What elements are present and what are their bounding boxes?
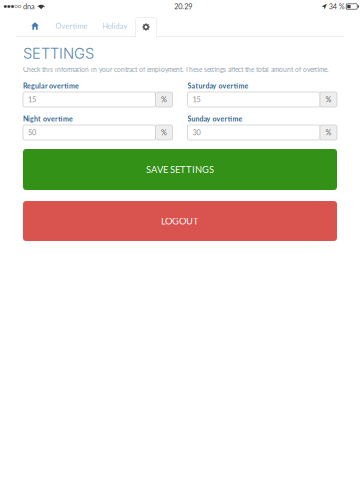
button[interactable]: Holiday bbox=[95, 15, 135, 37]
button[interactable]: LOGOUT bbox=[23, 201, 337, 241]
staticText: % bbox=[161, 128, 167, 137]
staticText: % bbox=[325, 128, 331, 137]
staticText: SETTINGS bbox=[23, 45, 94, 62]
staticText: LOGOUT bbox=[161, 215, 199, 227]
button[interactable]: Settings bbox=[135, 15, 157, 37]
staticText: % bbox=[161, 95, 167, 104]
staticText: 30 bbox=[192, 128, 200, 137]
button[interactable]: Home bbox=[16, 15, 48, 37]
staticText: Holiday bbox=[102, 22, 127, 30]
staticText: Saturday overtime bbox=[187, 81, 248, 90]
staticText: 34 % bbox=[329, 2, 345, 11]
staticText: dna bbox=[23, 2, 35, 11]
staticText: 15 bbox=[192, 95, 200, 104]
staticText: Overtime bbox=[55, 22, 87, 30]
staticText: 20.29 bbox=[174, 2, 192, 11]
staticText: Night overtime bbox=[23, 114, 73, 123]
button[interactable]: Overtime bbox=[48, 15, 95, 37]
staticText: 15 bbox=[28, 95, 36, 104]
staticText: Check this information in your contract … bbox=[23, 65, 329, 73]
staticText: Sunday overtime bbox=[187, 114, 242, 123]
staticText: % bbox=[325, 95, 331, 104]
button[interactable]: SAVE SETTINGS bbox=[23, 149, 337, 190]
staticText: Regular overtime bbox=[23, 81, 79, 90]
staticText: 50 bbox=[28, 128, 36, 137]
staticText: SAVE SETTINGS bbox=[146, 164, 214, 175]
